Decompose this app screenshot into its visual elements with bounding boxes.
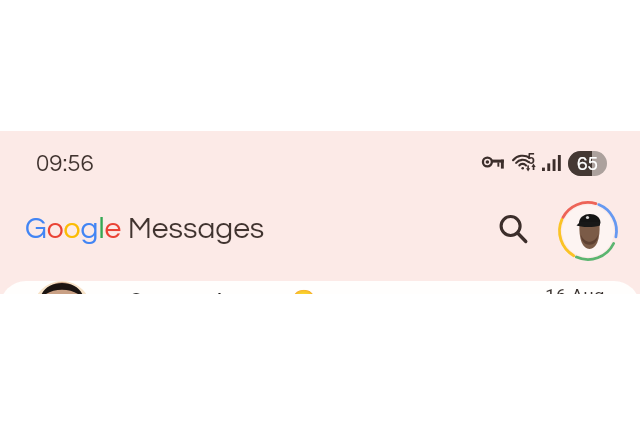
button[interactable]: Search (488, 203, 540, 255)
staticText: 09:56 (36, 151, 94, 176)
staticText: 16 Aug (545, 284, 605, 294)
staticText: 5 (527, 151, 536, 167)
button[interactable]: Account (556, 199, 620, 263)
button[interactable] (33, 281, 91, 294)
staticText: Can you the next 😊 (129, 289, 317, 294)
staticText: Google Messages (25, 213, 265, 244)
staticText: 65 (577, 154, 598, 174)
